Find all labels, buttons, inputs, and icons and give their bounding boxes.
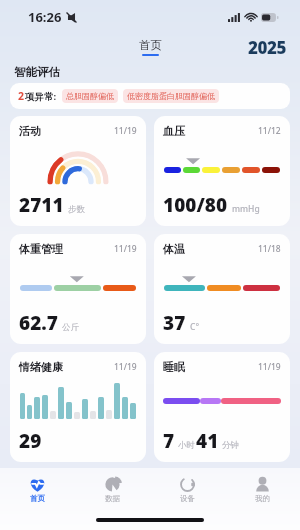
button[interactable]: 心脏健康 (154, 470, 290, 510)
staticText: 数据 (105, 494, 120, 503)
button[interactable]: 2025 (248, 36, 286, 59)
staticText: 我的 (255, 494, 270, 503)
button[interactable]: 设备 (150, 476, 225, 503)
staticText: 低密度脂蛋白胆固醇偏低 (127, 91, 215, 101)
staticText: 情绪健康 (19, 360, 63, 374)
staticText: 设备 (180, 494, 195, 503)
staticText: 2711 (19, 192, 64, 218)
staticText: 11/12 (258, 125, 281, 137)
staticText: 2 (18, 89, 25, 103)
staticText: 活动 (19, 124, 41, 138)
staticText: 2025 (248, 36, 286, 59)
staticText: 11/19 (114, 243, 137, 255)
staticText: 小时 (178, 440, 195, 451)
staticText: 心脏健康 (163, 478, 207, 492)
button[interactable]: 体温 (154, 234, 290, 344)
staticText: 分钟 (222, 440, 239, 451)
button[interactable]: 睡眠 (154, 352, 290, 462)
staticText: 体重管理 (19, 242, 63, 256)
staticText: 项异常: (25, 90, 57, 103)
staticText: mmHg (232, 203, 260, 215)
staticText: 步数 (68, 204, 85, 215)
button[interactable]: 数据 (75, 476, 150, 503)
staticText: 11/18 (258, 243, 281, 255)
button[interactable]: 血氧与海拔 (10, 470, 146, 510)
button[interactable]: 活动 (10, 116, 146, 226)
staticText: 总胆固醇偏低 (66, 91, 114, 101)
staticText: 11/19 (114, 479, 137, 491)
staticText: 血氧与海拔 (19, 478, 74, 492)
staticText: 7 (163, 428, 175, 454)
staticText: 11/19 (114, 125, 137, 137)
button[interactable]: 血压 (154, 116, 290, 226)
button[interactable]: 情绪健康 (10, 352, 146, 462)
button[interactable]: 体重管理 (10, 234, 146, 344)
button[interactable]: 我的 (225, 476, 300, 503)
staticText: 体温 (163, 242, 185, 256)
staticText: 首页 (139, 38, 162, 52)
staticText: 11/19 (114, 361, 137, 373)
button[interactable]: 首页 (139, 38, 162, 56)
button[interactable]: 2 (10, 83, 290, 109)
staticText: 血压 (163, 124, 185, 138)
staticText: 智能评估 (14, 65, 300, 79)
staticText: 37 (163, 310, 186, 336)
staticText: C° (190, 321, 200, 333)
staticText: 29 (19, 428, 42, 454)
staticText: 公斤 (62, 322, 79, 333)
staticText: 41 (196, 428, 219, 454)
button[interactable]: 首页 (0, 476, 75, 503)
staticText: 16:26 (28, 8, 62, 26)
staticText: 11/19 (258, 479, 281, 491)
staticText: 首页 (30, 494, 45, 503)
staticText: 睡眠 (163, 360, 185, 374)
staticText: 62.7 (19, 310, 58, 336)
staticText: 11/19 (258, 361, 281, 373)
staticText: 100/80 (163, 192, 228, 218)
